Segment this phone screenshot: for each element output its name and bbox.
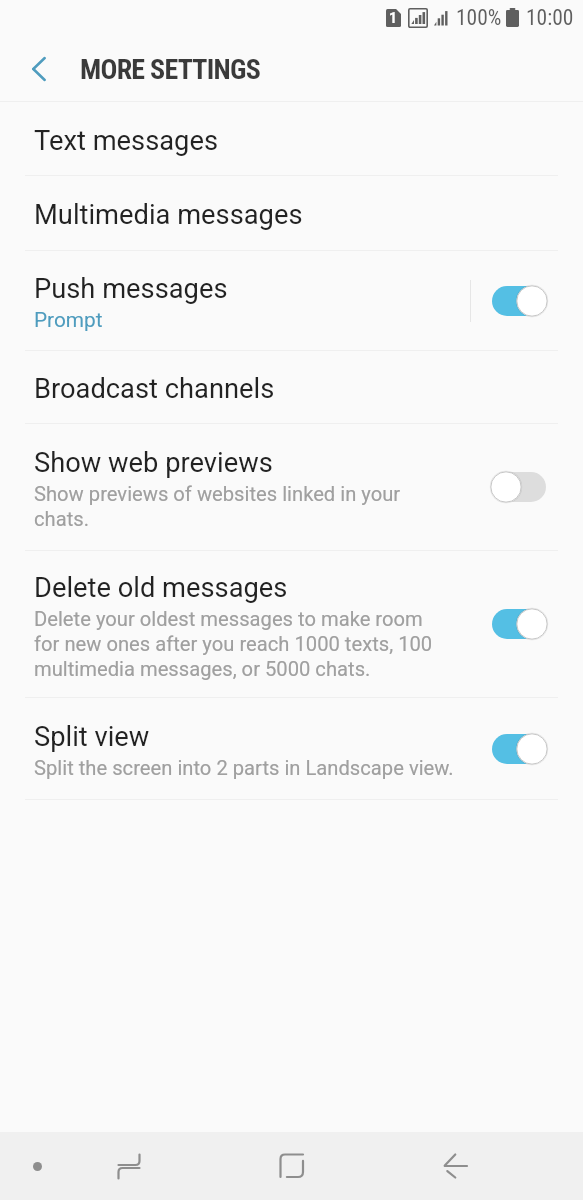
button[interactable]: Show web previews [0, 424, 583, 550]
button[interactable]: Push messages [0, 251, 583, 350]
button[interactable]: Back [422, 1132, 488, 1200]
staticText: Delete old messages [34, 572, 288, 604]
staticText: Push messages [34, 273, 228, 305]
button[interactable]: Split view [0, 698, 583, 799]
button[interactable]: Enabled [489, 731, 549, 767]
staticText: Delete your oldest messages to make room… [34, 607, 434, 681]
button[interactable]: Multimedia messages [0, 176, 583, 250]
staticText: Multimedia messages [34, 199, 303, 231]
staticText: Split view [34, 721, 150, 753]
button[interactable]: Delete old messages [0, 551, 583, 697]
button[interactable]: Disabled [489, 469, 549, 505]
button[interactable]: Broadcast channels [0, 351, 583, 423]
button[interactable]: Enabled [489, 283, 549, 319]
staticText: Split the screen into 2 parts in Landsca… [34, 756, 464, 780]
staticText: Prompt [34, 308, 103, 332]
staticText: Broadcast channels [34, 373, 275, 405]
staticText: 100% [456, 5, 502, 30]
button[interactable]: Home [259, 1132, 325, 1200]
button[interactable]: Text messages [0, 102, 583, 175]
button[interactable]: Show menu [4, 1132, 70, 1200]
button[interactable]: Recent apps [96, 1132, 162, 1200]
staticText: MORE SETTINGS [80, 53, 260, 86]
button[interactable]: Enabled [489, 606, 549, 642]
staticText: Text messages [34, 125, 219, 157]
staticText: Show web previews [34, 447, 273, 479]
staticText: 1 [389, 10, 398, 26]
staticText: Show previews of websites linked in your… [34, 482, 416, 531]
staticText: 10:00 [526, 5, 574, 30]
button[interactable]: Navigate up [19, 49, 59, 89]
